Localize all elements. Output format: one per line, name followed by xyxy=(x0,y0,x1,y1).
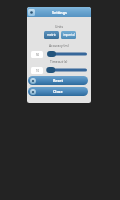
staticText: Settings xyxy=(52,10,67,15)
button[interactable]: Close xyxy=(28,87,88,96)
staticText: imperial xyxy=(63,33,75,37)
button[interactable]: imperial xyxy=(61,31,76,39)
staticText: 50 xyxy=(36,53,39,57)
button[interactable]: Slider xyxy=(48,66,87,74)
staticText: Accuracy (m) xyxy=(49,43,69,47)
staticText: Close xyxy=(53,89,63,94)
staticText: Reset xyxy=(53,78,64,83)
staticText: Units xyxy=(55,24,64,28)
button[interactable]: Slider xyxy=(48,50,87,58)
button[interactable]: 50 xyxy=(31,51,43,58)
staticText: Timeout (s) xyxy=(50,59,68,63)
button[interactable]: metric xyxy=(44,31,59,39)
button[interactable]: Settings menu xyxy=(28,9,35,16)
staticText: 10 xyxy=(36,69,39,73)
button[interactable]: 10 xyxy=(31,67,43,74)
staticText: metric xyxy=(47,33,57,37)
button[interactable]: Reset xyxy=(28,76,88,85)
